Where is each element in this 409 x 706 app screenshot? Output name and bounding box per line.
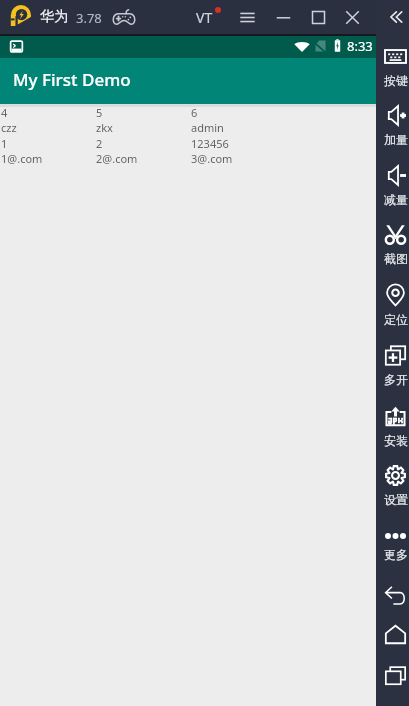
button[interactable]: Back bbox=[382, 584, 409, 607]
staticText: 2 bbox=[96, 136, 103, 151]
staticText: 加量 bbox=[384, 132, 408, 147]
staticText: zkx bbox=[96, 120, 113, 135]
button[interactable]: 按键 bbox=[376, 46, 409, 88]
button[interactable]: 设置 bbox=[376, 465, 409, 507]
staticText: 5 bbox=[96, 105, 103, 120]
staticText: 1 bbox=[1, 136, 8, 151]
button[interactable]: Minimize bbox=[271, 3, 296, 31]
button[interactable]: Game controls bbox=[108, 4, 139, 30]
staticText: 3.78 bbox=[76, 9, 102, 27]
button[interactable]: 更多 bbox=[376, 533, 409, 562]
button[interactable]: 减量 bbox=[376, 165, 409, 207]
staticText: 123456 bbox=[191, 136, 229, 151]
staticText: 更多 bbox=[384, 547, 408, 562]
button[interactable]: 加量 bbox=[376, 105, 409, 147]
staticText: 安装 bbox=[384, 433, 408, 448]
staticText: VT bbox=[196, 8, 213, 27]
button[interactable]: Maximize bbox=[306, 3, 331, 31]
staticText: My First Demo bbox=[13, 68, 131, 91]
staticText: 多开 bbox=[384, 372, 408, 387]
staticText: admin bbox=[191, 120, 224, 135]
staticText: 华为 bbox=[40, 8, 68, 26]
button[interactable]: 多开 bbox=[376, 345, 409, 387]
staticText: czz bbox=[1, 120, 17, 135]
staticText: 截图 bbox=[384, 251, 408, 266]
staticText: 2@.com bbox=[96, 151, 138, 166]
staticText: 3@.com bbox=[191, 151, 233, 166]
staticText: 减量 bbox=[384, 192, 408, 207]
staticText: 8:33 bbox=[347, 37, 373, 55]
button[interactable]: Menu bbox=[235, 3, 260, 31]
button[interactable]: 截图 bbox=[376, 224, 409, 266]
button[interactable]: Collapse bbox=[383, 4, 408, 29]
staticText: 6 bbox=[191, 105, 198, 120]
button[interactable]: Close bbox=[340, 3, 365, 31]
button[interactable]: Home bbox=[382, 623, 409, 646]
button[interactable]: 安装 bbox=[376, 406, 409, 448]
button[interactable]: Recents bbox=[382, 664, 409, 687]
staticText: 4 bbox=[1, 105, 8, 120]
staticText: 设置 bbox=[384, 492, 408, 507]
button[interactable]: 定位 bbox=[376, 285, 409, 327]
staticText: 按键 bbox=[384, 73, 408, 88]
staticText: 定位 bbox=[384, 312, 408, 327]
staticText: 1@.com bbox=[1, 151, 43, 166]
